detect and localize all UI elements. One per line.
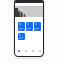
button[interactable]: Nav xyxy=(22,47,29,55)
button[interactable]: Nav xyxy=(36,47,43,55)
button[interactable] xyxy=(26,22,33,31)
button[interactable] xyxy=(18,33,25,40)
button[interactable]: Nav xyxy=(29,47,36,55)
button[interactable]: Nav xyxy=(15,47,22,55)
button[interactable] xyxy=(18,22,25,31)
button[interactable] xyxy=(34,22,41,31)
